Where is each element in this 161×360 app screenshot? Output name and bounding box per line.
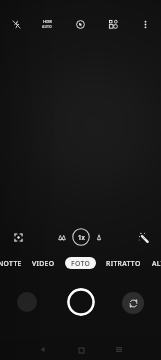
button[interactable]: Flash off — [3, 11, 29, 37]
button[interactable]: Focus — [6, 225, 30, 249]
staticText: AUTO — [42, 24, 52, 29]
button[interactable]: Home — [68, 339, 94, 360]
button[interactable]: RITRATTO — [102, 255, 144, 271]
button[interactable]: Recents — [106, 338, 132, 360]
button[interactable]: Gallery — [17, 292, 37, 312]
button[interactable]: VIDEO — [22, 255, 64, 271]
button[interactable]: Ultra wide — [51, 226, 73, 248]
button[interactable]: NOTTE — [0, 255, 31, 271]
button[interactable]: FOTO — [65, 257, 96, 269]
button[interactable]: Filters — [131, 225, 155, 249]
button[interactable]: Telephoto — [88, 226, 110, 248]
button[interactable]: Back — [29, 338, 55, 360]
staticText: HDR — [43, 19, 52, 24]
staticText: VIDEO — [32, 259, 55, 268]
button[interactable]: More settings — [132, 11, 158, 37]
button[interactable]: 1x — [71, 227, 91, 247]
staticText: RITRATTO — [106, 259, 141, 268]
staticText: NOTTE — [0, 259, 22, 268]
button[interactable]: Scene optimizer — [100, 11, 126, 37]
button[interactable]: Take photo — [67, 288, 95, 316]
button[interactable]: Motion photo — [67, 11, 93, 37]
staticText: 1x — [78, 233, 85, 241]
button[interactable]: HDR — [34, 13, 60, 35]
button[interactable]: ALTRO — [143, 255, 161, 271]
staticText: ALTRO — [152, 259, 161, 268]
button[interactable]: Switch camera — [122, 292, 144, 314]
staticText: FOTO — [71, 259, 91, 268]
